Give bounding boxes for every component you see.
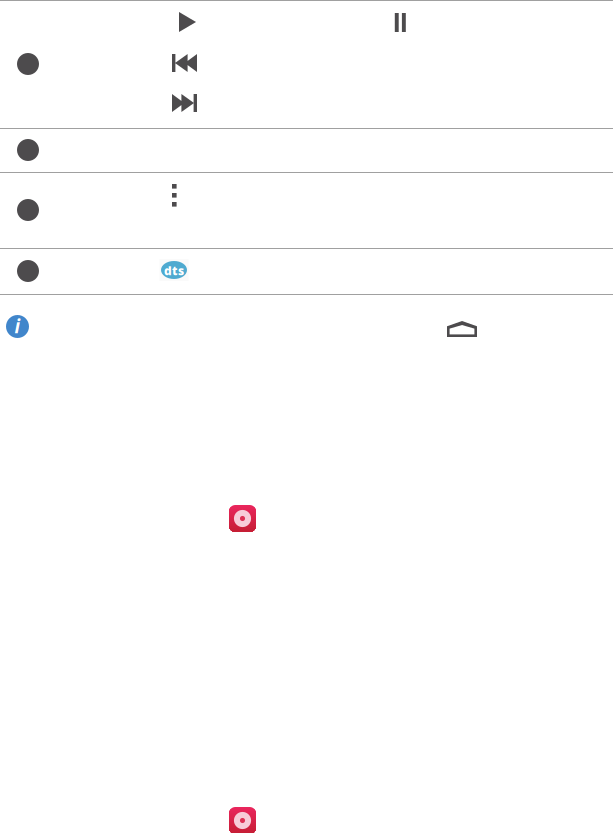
button[interactable]: Home xyxy=(447,321,477,337)
staticText: i xyxy=(14,314,20,338)
button[interactable]: Pause xyxy=(395,13,406,32)
button[interactable]: More options xyxy=(172,184,177,207)
button[interactable]: Play xyxy=(179,12,196,32)
button[interactable]: Previous track xyxy=(172,54,197,72)
staticText: dts xyxy=(164,262,184,278)
button[interactable]: Next track xyxy=(172,94,197,112)
